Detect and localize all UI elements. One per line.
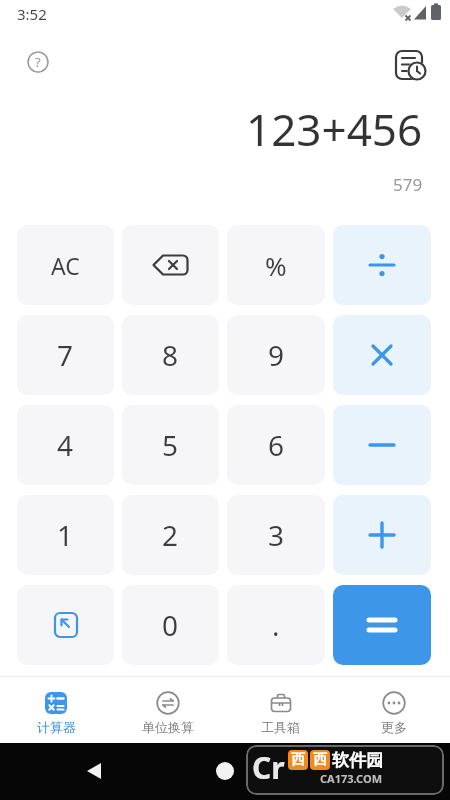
staticText: ? <box>35 53 41 71</box>
button[interactable] <box>216 762 234 780</box>
button[interactable]: 2 <box>122 495 219 575</box>
staticText: 工具箱 <box>261 719 300 735</box>
button[interactable]: AC <box>17 225 114 305</box>
staticText: . <box>272 606 280 644</box>
button[interactable] <box>333 585 431 665</box>
button[interactable]: 9 <box>227 315 325 395</box>
button[interactable]: 单位换算 <box>112 677 224 743</box>
staticText: 5 <box>162 426 179 464</box>
staticText: 3 <box>268 516 285 554</box>
staticText: 4 <box>57 426 74 464</box>
button[interactable] <box>333 405 431 485</box>
staticText: % <box>265 248 287 283</box>
button[interactable] <box>333 225 431 305</box>
staticText: 3:52 <box>17 4 47 24</box>
button[interactable]: 0 <box>122 585 219 665</box>
staticText: 2 <box>162 516 179 554</box>
button[interactable]: 7 <box>17 315 114 395</box>
staticText: 0 <box>162 606 179 644</box>
staticText: CA173.COM <box>320 771 383 786</box>
button[interactable]: 更多 <box>337 677 450 743</box>
staticText: 西 <box>291 751 305 769</box>
button[interactable]: 5 <box>122 405 219 485</box>
button[interactable]: . <box>227 585 325 665</box>
staticText: 6 <box>268 426 285 464</box>
staticText: AC <box>51 250 80 281</box>
button[interactable] <box>333 495 431 575</box>
button[interactable]: 4 <box>17 405 114 485</box>
staticText: 123+456 <box>246 99 423 159</box>
button[interactable] <box>122 225 219 305</box>
button[interactable]: 工具箱 <box>224 677 337 743</box>
button[interactable]: 6 <box>227 405 325 485</box>
staticText: 8 <box>162 336 179 374</box>
button[interactable] <box>17 585 114 665</box>
staticText: 9 <box>268 336 285 374</box>
button[interactable]: % <box>227 225 325 305</box>
staticText: Cr <box>252 747 285 788</box>
staticText: 1 <box>57 516 74 554</box>
staticText: 西 <box>313 751 327 769</box>
button[interactable]: ? <box>27 51 49 73</box>
button[interactable]: 计算器 <box>0 677 112 743</box>
button[interactable]: 1 <box>17 495 114 575</box>
button[interactable]: 8 <box>122 315 219 395</box>
staticText: 更多 <box>381 719 407 735</box>
button[interactable] <box>333 315 431 395</box>
staticText: 软件园 <box>332 750 383 771</box>
staticText: 7 <box>57 336 74 374</box>
staticText: 单位换算 <box>142 719 194 735</box>
button[interactable] <box>86 762 104 780</box>
staticText: 579 <box>393 173 423 196</box>
staticText: 计算器 <box>37 719 76 735</box>
button[interactable]: 3 <box>227 495 325 575</box>
button[interactable] <box>394 48 428 82</box>
